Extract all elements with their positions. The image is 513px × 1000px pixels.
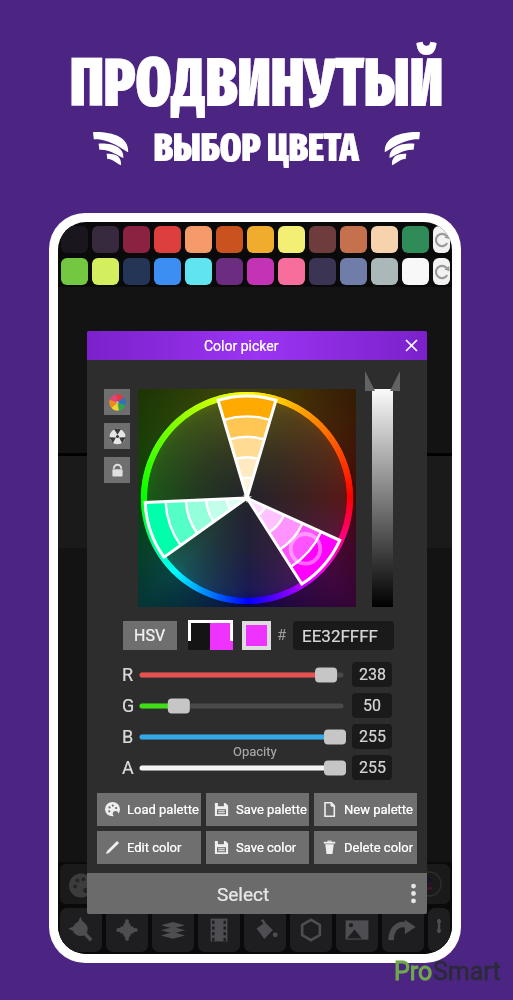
- button[interactable]: Tool: [322, 864, 361, 904]
- staticText: 238: [359, 665, 386, 684]
- button[interactable]: [154, 226, 181, 253]
- button[interactable]: [61, 258, 88, 285]
- button[interactable]: 255: [352, 755, 392, 780]
- staticText: ПРОДВИНУТЫЙ: [70, 42, 443, 124]
- button[interactable]: Gradient: [408, 864, 450, 904]
- button[interactable]: Palette: [60, 864, 102, 904]
- button[interactable]: [247, 258, 274, 285]
- button[interactable]: Tool: [236, 864, 275, 904]
- staticText: G: [122, 695, 135, 716]
- staticText: Opacity: [233, 744, 277, 759]
- button[interactable]: 50: [352, 693, 392, 718]
- button[interactable]: [309, 258, 336, 285]
- staticText: Select: [217, 883, 270, 905]
- button[interactable]: Edit color: [97, 831, 201, 864]
- button[interactable]: Color wheel: [104, 389, 130, 415]
- button[interactable]: Lock: [104, 457, 130, 483]
- button[interactable]: Layers: [152, 908, 194, 952]
- button[interactable]: [278, 258, 305, 285]
- button[interactable]: Delete color: [314, 831, 417, 864]
- button[interactable]: Tool: [365, 864, 404, 904]
- staticText: Color picker: [204, 338, 279, 354]
- button[interactable]: [142, 664, 343, 686]
- button[interactable]: Slider: [428, 908, 450, 952]
- button[interactable]: [402, 226, 429, 253]
- button[interactable]: [142, 726, 343, 748]
- button[interactable]: [185, 258, 212, 285]
- staticText: B: [122, 726, 134, 747]
- button[interactable]: Tool: [279, 864, 318, 904]
- button[interactable]: [61, 226, 88, 253]
- button[interactable]: [92, 226, 119, 253]
- button[interactable]: Tool: [193, 864, 232, 904]
- button[interactable]: [402, 258, 429, 285]
- button[interactable]: [371, 226, 398, 253]
- button[interactable]: [123, 258, 150, 285]
- button[interactable]: [185, 226, 212, 253]
- staticText: Smart: [433, 957, 501, 986]
- staticText: Load palette: [127, 802, 199, 817]
- button[interactable]: [309, 226, 336, 253]
- button[interactable]: [278, 226, 305, 253]
- staticText: #: [277, 626, 287, 644]
- staticText: Save palette: [236, 802, 307, 817]
- button[interactable]: Fill: [244, 908, 286, 952]
- button[interactable]: Close: [395, 331, 427, 360]
- staticText: EE32FFFF: [302, 626, 379, 646]
- button[interactable]: Refresh palette: [433, 258, 450, 285]
- button[interactable]: [371, 258, 398, 285]
- button[interactable]: Move: [106, 908, 148, 952]
- button[interactable]: Refresh palette: [433, 226, 450, 253]
- button[interactable]: Shape: [290, 908, 332, 952]
- staticText: Save color: [236, 840, 297, 855]
- staticText: Pro: [394, 957, 433, 986]
- staticText: Delete color: [344, 840, 414, 855]
- button[interactable]: 238: [352, 662, 392, 687]
- button[interactable]: [142, 695, 343, 717]
- button[interactable]: [216, 226, 243, 253]
- button[interactable]: [142, 757, 343, 779]
- staticText: 50: [363, 696, 381, 715]
- staticText: A: [122, 757, 134, 778]
- button[interactable]: [154, 258, 181, 285]
- button[interactable]: Load palette: [97, 793, 201, 826]
- button[interactable]: [340, 258, 367, 285]
- button[interactable]: Image: [336, 908, 378, 952]
- button[interactable]: Select: [87, 873, 427, 914]
- button[interactable]: Harmony: [104, 423, 130, 449]
- button[interactable]: [216, 258, 243, 285]
- button[interactable]: [92, 258, 119, 285]
- button[interactable]: Zoom: [60, 908, 102, 952]
- button[interactable]: [247, 226, 274, 253]
- staticText: Edit color: [127, 840, 182, 855]
- button[interactable]: New palette: [314, 793, 417, 826]
- staticText: ВЫБОР ЦВЕТА: [154, 124, 359, 172]
- button[interactable]: HSV: [123, 621, 177, 650]
- button[interactable]: [340, 226, 367, 253]
- button[interactable]: [188, 620, 233, 650]
- staticText: R: [122, 664, 134, 685]
- button[interactable]: [123, 226, 150, 253]
- button[interactable]: Save color: [206, 831, 309, 864]
- button[interactable]: EE32FFFF: [293, 621, 394, 650]
- staticText: 255: [359, 727, 386, 746]
- button[interactable]: Save palette: [206, 793, 309, 826]
- button[interactable]: Tool: [150, 864, 189, 904]
- staticText: HSV: [134, 626, 166, 645]
- button[interactable]: Frames: [198, 908, 240, 952]
- staticText: 255: [359, 758, 386, 777]
- button[interactable]: More options: [399, 873, 427, 914]
- button[interactable]: 255: [352, 724, 392, 749]
- staticText: New palette: [344, 802, 413, 817]
- button[interactable]: Redo: [382, 908, 424, 952]
- button[interactable]: Tool: [106, 864, 146, 904]
